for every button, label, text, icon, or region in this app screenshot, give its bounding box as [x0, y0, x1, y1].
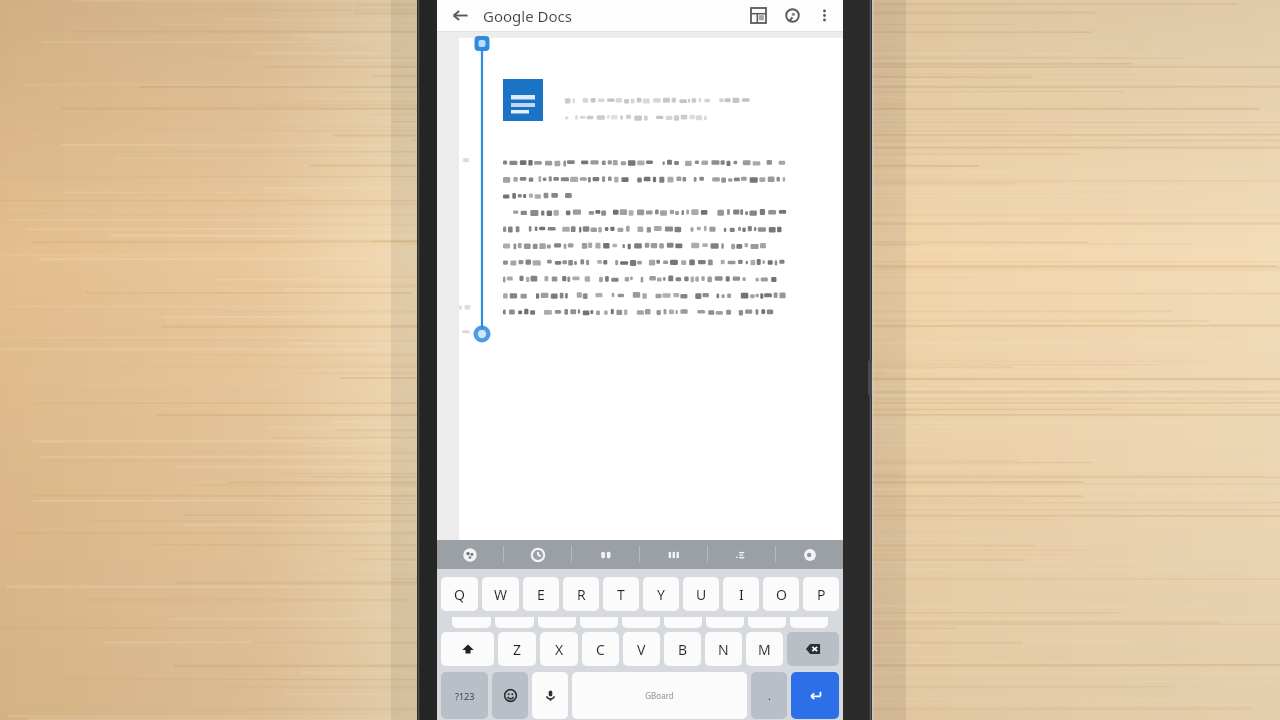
- button[interactable]: Backspace: [787, 632, 839, 666]
- button[interactable]: B: [664, 632, 701, 666]
- staticText: R: [577, 585, 586, 604]
- button[interactable]: I: [723, 577, 759, 611]
- button[interactable]: V: [623, 632, 660, 666]
- button[interactable]: [790, 617, 828, 628]
- button[interactable]: C: [582, 632, 619, 666]
- button[interactable]: clock: [504, 540, 571, 569]
- button[interactable]: W: [482, 577, 519, 611]
- staticText: W: [494, 585, 508, 604]
- staticText: T: [617, 585, 625, 604]
- button[interactable]: [453, 38, 843, 546]
- button[interactable]: ?123: [441, 672, 488, 719]
- button[interactable]: [706, 617, 744, 628]
- button[interactable]: more: [776, 540, 843, 569]
- button[interactable]: [495, 617, 534, 628]
- staticText: .: [768, 688, 771, 703]
- button[interactable]: [664, 617, 702, 628]
- staticText: Y: [657, 585, 665, 604]
- staticText: V: [637, 640, 646, 659]
- button[interactable]: size: [708, 540, 775, 569]
- button[interactable]: [452, 617, 491, 628]
- button[interactable]: [538, 617, 576, 628]
- staticText: E: [537, 585, 545, 604]
- button[interactable]: GBoard: [572, 672, 747, 719]
- button[interactable]: R: [563, 577, 599, 611]
- button[interactable]: U: [683, 577, 719, 611]
- staticText: M: [758, 640, 771, 659]
- staticText: GBoard: [645, 690, 674, 701]
- button[interactable]: Voice input: [532, 672, 568, 719]
- button[interactable]: Emoji: [492, 672, 528, 719]
- button[interactable]: .: [751, 672, 787, 719]
- button[interactable]: N: [705, 632, 742, 666]
- button[interactable]: Comments: [775, 0, 809, 31]
- button[interactable]: E: [523, 577, 559, 611]
- button[interactable]: [580, 617, 618, 628]
- staticText: P: [817, 585, 826, 604]
- staticText: O: [776, 585, 787, 604]
- button[interactable]: Shift: [441, 632, 494, 666]
- button[interactable]: glyph: [572, 540, 639, 569]
- staticText: I: [739, 585, 744, 604]
- button[interactable]: edit: [640, 540, 707, 569]
- button[interactable]: [622, 617, 660, 628]
- button[interactable]: T: [603, 577, 639, 611]
- button[interactable]: M: [746, 632, 783, 666]
- staticText: Google Docs: [483, 6, 572, 26]
- button[interactable]: bold: [437, 540, 503, 569]
- button[interactable]: P: [803, 577, 839, 611]
- staticText: Q: [454, 585, 465, 604]
- button[interactable]: Y: [643, 577, 679, 611]
- staticText: Z: [513, 640, 522, 659]
- button[interactable]: O: [763, 577, 799, 611]
- button[interactable]: Z: [498, 632, 536, 666]
- staticText: C: [596, 640, 605, 659]
- button[interactable]: [748, 617, 786, 628]
- staticText: U: [696, 585, 707, 604]
- staticText: X: [555, 640, 564, 659]
- staticText: B: [678, 640, 688, 659]
- button[interactable]: Q: [441, 577, 478, 611]
- staticText: ?123: [455, 690, 475, 702]
- button[interactable]: More options: [809, 0, 839, 31]
- button[interactable]: Enter: [791, 672, 839, 719]
- staticText: N: [718, 640, 729, 659]
- button[interactable]: Insert: [741, 0, 775, 31]
- button[interactable]: Back: [437, 0, 483, 31]
- button[interactable]: X: [540, 632, 578, 666]
